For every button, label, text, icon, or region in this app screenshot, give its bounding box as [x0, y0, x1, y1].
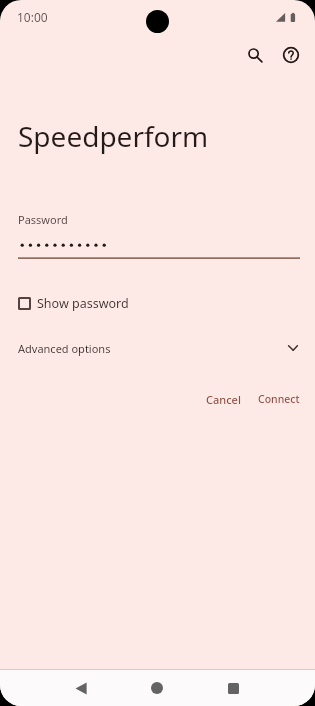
staticText: Speedperform [18, 117, 209, 155]
button[interactable]: Recents [216, 671, 250, 705]
button[interactable]: Home [140, 671, 174, 705]
button[interactable]: Show password [0, 291, 315, 315]
button[interactable]: Help [273, 37, 309, 73]
button[interactable]: Search [237, 37, 273, 73]
staticText: Connect [258, 392, 300, 406]
button[interactable]: Cancel [197, 387, 250, 412]
button[interactable]: Advanced options [0, 336, 315, 360]
staticText: Show password [37, 295, 129, 312]
button[interactable]: Connect [249, 387, 309, 411]
staticText: Cancel [206, 392, 241, 407]
staticText: Advanced options [18, 341, 111, 356]
staticText: 10:00 [17, 9, 48, 25]
staticText: Password [18, 212, 68, 227]
button[interactable]: Back [64, 671, 98, 705]
